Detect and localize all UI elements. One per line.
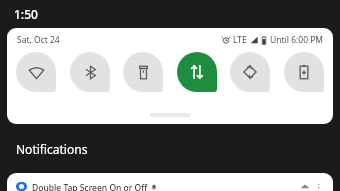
staticText: Notifications <box>16 141 88 157</box>
button[interactable]: Wi-Fi <box>16 52 56 92</box>
button[interactable]: Battery Saver <box>284 52 324 92</box>
staticText: Double Tap Screen On or Off <box>32 182 148 191</box>
button[interactable]: Bluetooth <box>70 52 110 92</box>
staticText: Sat, Oct 24 <box>17 34 60 46</box>
staticText: ⋮ <box>314 182 324 191</box>
button[interactable]: Auto-rotate <box>230 52 270 92</box>
staticText: Until 6:00 PM <box>270 34 324 46</box>
staticText: LTE <box>233 34 247 46</box>
button[interactable]: Expand quick settings <box>7 113 333 124</box>
button[interactable]: Mobile data <box>177 52 217 92</box>
staticText: 1:50 <box>14 6 38 22</box>
button[interactable]: Double Tap Screen On or Off <box>7 173 333 191</box>
button[interactable]: Collapse notification <box>298 182 312 191</box>
button[interactable]: Flashlight <box>123 52 163 92</box>
